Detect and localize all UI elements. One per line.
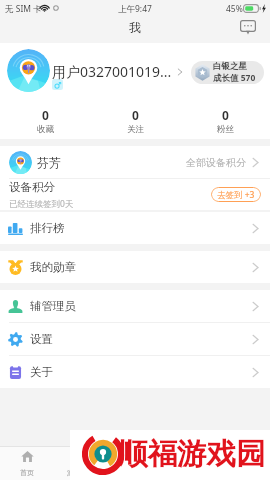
staticText: 全部设备积分 — [186, 156, 246, 169]
button[interactable]: 排行榜 — [0, 212, 270, 244]
button[interactable]: 关于 — [0, 356, 270, 388]
button[interactable]: 首页 — [0, 447, 54, 480]
button[interactable]: 设置 — [0, 323, 270, 355]
button[interactable]: 消息 — [162, 447, 216, 480]
staticText: 45% — [226, 3, 243, 15]
button[interactable]: 我的勋章 — [0, 251, 270, 283]
staticText: 去签到 +3 — [217, 189, 255, 201]
staticText: 用户0327001019... — [52, 62, 172, 81]
button[interactable]: 去签到 +3 — [211, 187, 261, 202]
button[interactable]: 白银之星 — [191, 61, 264, 84]
staticText: 收藏 — [37, 124, 54, 135]
button[interactable]: 0 — [90, 100, 180, 139]
staticText: 我 — [0, 20, 270, 35]
button[interactable]: 我的 — [216, 447, 270, 480]
staticText: 设置 — [30, 332, 53, 346]
staticText: 白银之星 — [213, 61, 247, 72]
staticText: 0 — [132, 107, 139, 123]
staticText: 设备积分 — [9, 180, 55, 194]
staticText: 上午9:47 — [118, 3, 152, 15]
staticText: 游戏中心 — [67, 468, 95, 477]
staticText: 顺福游戏园 — [118, 436, 266, 473]
staticText: 排行榜 — [30, 221, 65, 235]
staticText: 首页 — [20, 468, 34, 477]
staticText: 关注 — [127, 124, 144, 135]
staticText: 已经连续签到0天 — [9, 198, 74, 210]
button[interactable]: 芬芳 — [0, 146, 270, 178]
button[interactable]: 0 — [0, 100, 90, 139]
staticText: 成长值 570 — [213, 72, 256, 84]
staticText: 0 — [42, 107, 49, 123]
button[interactable]: Messages — [232, 14, 263, 41]
staticText: 芬芳 — [37, 155, 61, 170]
button[interactable]: 游戏中心 — [54, 447, 108, 480]
staticText: 无 SIM 卡 — [5, 3, 42, 15]
staticText: 0 — [222, 107, 229, 123]
staticText: 粉丝 — [217, 124, 234, 135]
button[interactable]: 0 — [180, 100, 270, 139]
button[interactable]: 辅管理员 — [0, 290, 270, 322]
button[interactable]: 发现 — [108, 447, 162, 480]
staticText: 辅管理员 — [30, 299, 76, 313]
staticText: 我的勋章 — [30, 260, 76, 274]
staticText: 关于 — [30, 365, 53, 379]
button[interactable]: 用户0327001019... — [52, 43, 187, 100]
